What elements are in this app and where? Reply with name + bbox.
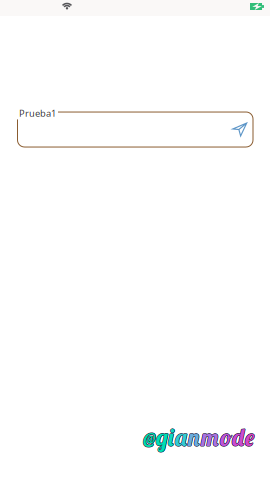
staticText: e — [246, 422, 256, 452]
staticText: n — [188, 421, 201, 451]
staticText: g — [156, 422, 168, 452]
staticText: g — [157, 422, 169, 452]
staticText: Prueba1 — [19, 107, 56, 119]
staticText: a — [176, 422, 189, 452]
button[interactable]: Send — [232, 113, 253, 146]
staticText: e — [245, 422, 255, 452]
staticText: g — [156, 422, 168, 452]
staticText: d — [232, 422, 245, 452]
staticText: i — [168, 421, 175, 451]
staticText: n — [187, 422, 200, 452]
staticText: o — [219, 422, 231, 452]
staticText: d — [232, 422, 245, 452]
staticText: @ — [143, 422, 156, 452]
staticText: @ — [144, 422, 157, 452]
staticText: g — [156, 421, 168, 451]
staticText: d — [231, 422, 244, 452]
staticText: i — [168, 422, 175, 452]
staticText: @ — [143, 421, 156, 451]
staticText: @ — [143, 422, 156, 452]
staticText: m — [201, 422, 220, 452]
staticText: o — [220, 421, 232, 451]
staticText: n — [188, 422, 201, 452]
staticText: a — [175, 422, 188, 452]
staticText: i — [169, 422, 176, 452]
staticText: e — [244, 422, 254, 452]
staticText: d — [232, 421, 245, 451]
staticText: m — [200, 422, 219, 452]
staticText: i — [167, 422, 174, 452]
staticText: m — [202, 422, 221, 452]
staticText: a — [174, 422, 187, 452]
staticText: a — [175, 422, 188, 452]
staticText: g — [155, 422, 167, 452]
staticText: o — [220, 422, 232, 452]
staticText: o — [220, 422, 232, 452]
staticText: o — [221, 422, 233, 452]
staticText: e — [245, 422, 255, 452]
staticText: @ — [142, 422, 155, 452]
staticText: n — [188, 422, 201, 452]
staticText: i — [168, 422, 175, 452]
staticText: e — [245, 421, 255, 451]
staticText: n — [189, 422, 202, 452]
button[interactable] — [17, 112, 253, 147]
staticText: m — [201, 421, 220, 451]
staticText: d — [233, 422, 246, 452]
staticText: a — [175, 421, 188, 451]
staticText: m — [201, 422, 220, 452]
